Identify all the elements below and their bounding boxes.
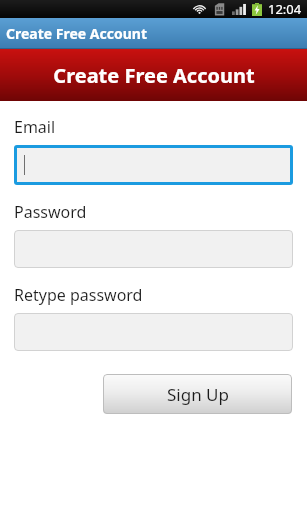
staticText: Create Free Account bbox=[53, 62, 255, 89]
button[interactable]: Sign Up bbox=[103, 374, 292, 414]
staticText: 12:04 bbox=[268, 0, 302, 18]
staticText: Email bbox=[14, 116, 56, 138]
button[interactable] bbox=[14, 230, 293, 268]
staticText: Create Free Account bbox=[6, 24, 147, 43]
staticText: Retype password bbox=[14, 284, 143, 306]
staticText: Password bbox=[14, 201, 87, 223]
button[interactable] bbox=[17, 148, 290, 182]
button[interactable] bbox=[14, 313, 293, 351]
staticText: Sign Up bbox=[167, 383, 229, 406]
